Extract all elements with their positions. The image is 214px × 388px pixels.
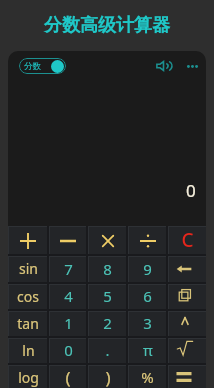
staticText: .: [105, 340, 110, 360]
button[interactable]: 4: [50, 285, 86, 309]
other: Square root: [175, 338, 195, 358]
button[interactable]: ): [89, 366, 126, 388]
button[interactable]: log: [9, 366, 47, 388]
other: Divide: [138, 231, 158, 251]
staticText: C: [181, 227, 194, 253]
button[interactable]: Multiply: [89, 227, 126, 254]
other: Minus: [58, 231, 78, 251]
staticText: 3: [143, 313, 152, 333]
staticText: π: [143, 340, 153, 360]
staticText: 2: [103, 313, 112, 333]
staticText: %: [141, 367, 154, 387]
staticText: sin: [19, 259, 38, 278]
staticText: 9: [143, 259, 152, 279]
button[interactable]: 3: [129, 312, 166, 336]
button[interactable]: Backspace: [169, 257, 206, 282]
button[interactable]: 0: [50, 339, 86, 363]
button[interactable]: Square root: [169, 339, 206, 363]
staticText: 分数: [24, 61, 41, 72]
other: Multiply: [98, 231, 118, 251]
button[interactable]: (: [50, 366, 86, 388]
button[interactable]: Power: [169, 312, 206, 336]
staticText: 7: [64, 259, 73, 279]
button[interactable]: ln: [9, 339, 47, 363]
button[interactable]: .: [89, 339, 126, 363]
staticText: 4: [64, 286, 73, 306]
button[interactable]: sin: [9, 257, 47, 282]
other: Equals: [174, 367, 194, 387]
button[interactable]: tan: [9, 312, 47, 336]
button[interactable]: π: [129, 339, 166, 363]
staticText: tan: [17, 314, 39, 333]
other: Plus: [18, 231, 38, 251]
button[interactable]: Copy: [169, 285, 206, 309]
staticText: ): [105, 366, 111, 388]
staticText: (: [65, 366, 71, 388]
staticText: log: [18, 368, 39, 387]
staticText: cos: [17, 287, 39, 306]
button[interactable]: 8: [89, 257, 126, 282]
button[interactable]: 1: [50, 312, 86, 336]
button[interactable]: 6: [129, 285, 166, 309]
button[interactable]: 9: [129, 257, 166, 282]
staticText: 6: [143, 286, 152, 306]
button[interactable]: 2: [89, 312, 126, 336]
other: Power: [175, 311, 195, 331]
staticText: 5: [103, 286, 112, 306]
other: Copy: [175, 286, 195, 306]
button[interactable]: %: [129, 366, 166, 388]
button[interactable]: More options: [182, 56, 202, 76]
button[interactable]: Divide: [129, 227, 166, 254]
button[interactable]: C: [169, 227, 206, 254]
staticText: 8: [103, 259, 112, 279]
button[interactable]: cos: [9, 285, 47, 309]
button[interactable]: Plus: [9, 227, 47, 254]
button[interactable]: Sound: [153, 56, 173, 76]
staticText: 0: [186, 179, 196, 202]
button[interactable]: 7: [50, 257, 86, 282]
staticText: 1: [64, 313, 73, 333]
button[interactable]: Equals: [169, 366, 206, 388]
other: Backspace: [174, 259, 194, 279]
staticText: ln: [22, 341, 35, 360]
button[interactable]: 5: [89, 285, 126, 309]
button[interactable]: Minus: [50, 227, 86, 254]
staticText: 0: [64, 340, 73, 360]
button[interactable]: 分数: [19, 58, 66, 74]
staticText: 分数高级计算器: [44, 14, 170, 37]
